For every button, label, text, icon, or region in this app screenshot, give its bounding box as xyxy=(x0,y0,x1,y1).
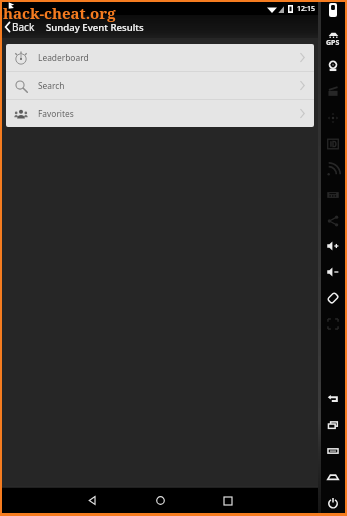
button[interactable]: Zoom xyxy=(321,316,345,332)
button[interactable]: Recents xyxy=(211,488,245,513)
button[interactable]: Overview xyxy=(321,417,345,433)
staticText: Leaderboard xyxy=(38,52,89,63)
button[interactable]: Leaderboard xyxy=(6,44,314,71)
button[interactable]: Home xyxy=(321,469,345,485)
button[interactable]: ID xyxy=(321,136,345,152)
button[interactable]: Keyboard xyxy=(321,187,345,203)
button[interactable]: Power xyxy=(321,495,345,511)
button[interactable]: Cellular xyxy=(321,162,345,178)
button[interactable]: Back xyxy=(321,391,345,407)
staticText: Favorites xyxy=(38,108,74,119)
button[interactable]: Volume up xyxy=(321,238,345,254)
button[interactable]: D-pad xyxy=(321,110,345,126)
staticText: Sunday Event Results xyxy=(46,21,144,34)
staticText: hack-cheat.org xyxy=(3,3,116,23)
button[interactable]: Home xyxy=(143,488,177,513)
staticText: Back xyxy=(12,20,35,34)
button[interactable]: Volume down xyxy=(321,264,345,280)
button[interactable]: Rotate xyxy=(321,290,345,306)
button[interactable]: Share xyxy=(321,213,345,229)
staticText: GPS xyxy=(326,38,340,47)
button[interactable]: Back xyxy=(2,18,38,36)
button[interactable]: Menu xyxy=(321,443,345,459)
staticText: 12:15 xyxy=(297,4,315,14)
staticText: Search xyxy=(38,80,65,91)
button[interactable]: Favorites xyxy=(6,100,314,127)
button[interactable]: Camera xyxy=(321,84,345,100)
button[interactable]: Search xyxy=(6,72,314,99)
button[interactable]: Location xyxy=(321,58,345,74)
button[interactable]: Back xyxy=(75,488,109,513)
button[interactable]: GPS fix xyxy=(321,31,345,47)
